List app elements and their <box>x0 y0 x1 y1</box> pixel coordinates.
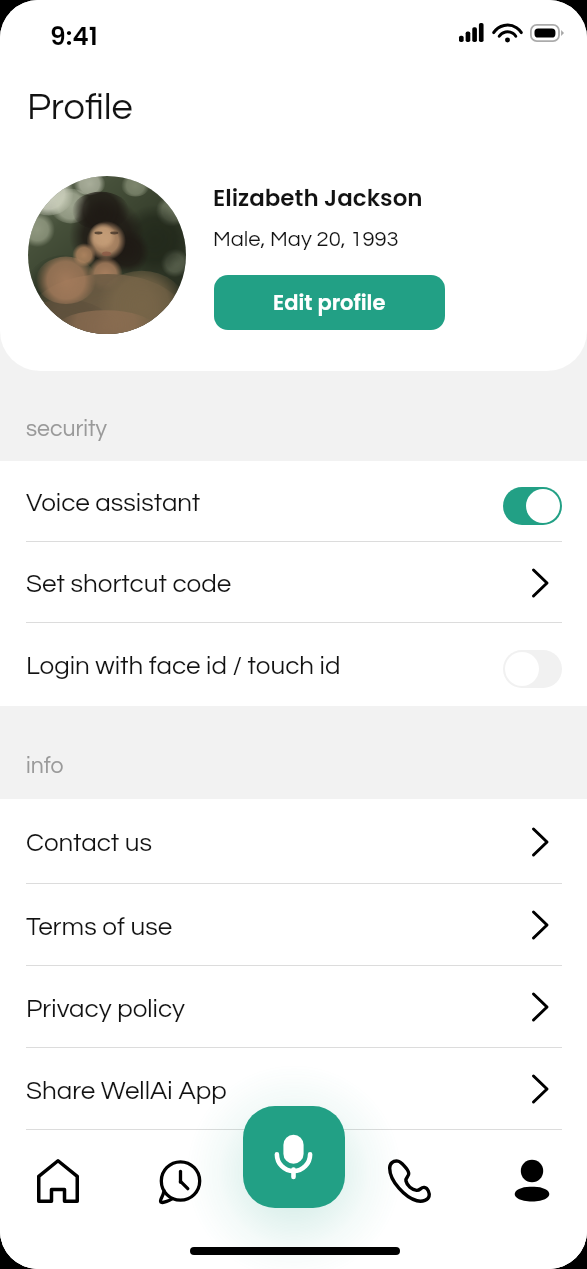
staticText: Male, May 20, 1993 <box>213 228 399 251</box>
staticText: security <box>26 417 108 441</box>
other: Open <box>532 827 562 857</box>
button[interactable]: Terms of use <box>0 884 587 966</box>
button[interactable]: Voice assistant <box>243 1106 345 1208</box>
staticText: Elizabeth Jackson <box>213 182 423 214</box>
other: Open <box>532 1074 562 1104</box>
button[interactable]: Set shortcut code <box>0 542 587 623</box>
button[interactable]: Off <box>503 650 562 688</box>
staticText: Profile <box>27 88 133 127</box>
staticText: Privacy policy <box>26 996 186 1023</box>
staticText: Login with face id / touch id <box>26 653 341 680</box>
staticText: info <box>26 754 64 778</box>
staticText: Voice assistant <box>26 490 201 517</box>
staticText: Contact us <box>26 830 153 857</box>
button[interactable]: Contact us <box>0 799 587 884</box>
staticText: Terms of use <box>26 914 173 941</box>
button[interactable]: Profile <box>508 1157 556 1205</box>
button[interactable]: Voice assistant <box>0 461 587 542</box>
button[interactable]: Login with face id / touch id <box>0 623 587 706</box>
button[interactable]: Share WellAi App <box>0 1048 587 1130</box>
button[interactable]: Calls <box>386 1157 434 1205</box>
button[interactable]: Edit profile <box>214 275 445 330</box>
button[interactable]: Home <box>34 1157 82 1205</box>
other: Open <box>532 910 562 940</box>
staticText: Edit profile <box>273 288 386 317</box>
button[interactable]: Privacy policy <box>0 966 587 1048</box>
other: Open <box>532 992 562 1022</box>
staticText: Set shortcut code <box>26 571 232 598</box>
other: Open <box>532 568 562 598</box>
staticText: 9:41 <box>50 19 98 54</box>
staticText: Share WellAi App <box>26 1078 227 1105</box>
button[interactable]: History <box>156 1157 204 1205</box>
button[interactable]: On <box>503 487 562 525</box>
